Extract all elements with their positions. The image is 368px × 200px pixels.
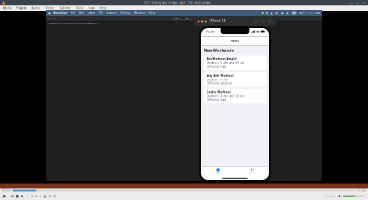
staticText: ◧ [286, 11, 289, 14]
staticText: Abs Workout Simple! [206, 57, 237, 61]
staticText: 15:02 [357, 189, 366, 192]
staticText: Tools [76, 6, 83, 10]
staticText: ⇄ [35, 195, 37, 198]
staticText: Debug [121, 11, 131, 15]
button[interactable]: Abs Workout Simple! [204, 55, 266, 70]
staticText: Home [230, 39, 239, 42]
staticText: Video [46, 6, 55, 10]
staticText: □ [357, 1, 360, 4]
staticText: Difficulty: easy [206, 65, 225, 68]
staticText: Duration: 4 min and 20 sec [206, 94, 244, 98]
button[interactable]: Cardio Workout [204, 89, 266, 103]
staticText: Difficulty: hard [206, 98, 226, 102]
staticText: Cardio Workout [206, 90, 230, 94]
staticText: ⚙ [53, 195, 55, 198]
staticText: 10:58 [205, 30, 214, 33]
button[interactable]: Play [2, 194, 7, 198]
staticText: Easy Arm Workout [206, 74, 233, 77]
staticText: ✕ [363, 1, 365, 4]
staticText: ▲ [271, 11, 273, 14]
staticText: I/O [99, 11, 103, 15]
staticText: ▦ [44, 195, 47, 198]
staticText: Playback [16, 6, 26, 10]
staticText: user — -zsh — 138×38 [173, 17, 206, 20]
staticText: Edit [79, 11, 84, 15]
staticText: Duration: 5 min and 45 sec [206, 61, 244, 65]
staticText: iPhone 14 [210, 19, 226, 22]
staticText: Difficulty: medium [206, 82, 231, 85]
staticText: — [350, 1, 353, 4]
staticText: File [71, 11, 76, 15]
button[interactable]: Easy Arm Workout [204, 72, 266, 87]
staticText: Media [3, 6, 11, 10]
staticText: Mon 11:27 AM [299, 11, 320, 15]
staticText: 001 Testing app in Expo.mp4 - VLC media … [144, 1, 211, 4]
staticText: Window [134, 11, 145, 15]
staticText: Home [216, 172, 220, 174]
staticText: ⟲ [31, 195, 33, 198]
button[interactable]: Exercise [235, 168, 269, 174]
staticText: Last login: Mon Jan 16 11:27:04 on ttys0… [48, 22, 99, 24]
staticText: 00:41 [2, 189, 11, 192]
staticText: Help [99, 6, 106, 10]
staticText: ▣ [281, 11, 284, 14]
staticText: Device [87, 11, 95, 15]
button[interactable]: Home [201, 168, 235, 174]
staticText: Exercise [248, 172, 255, 174]
staticText: Simulator [53, 11, 67, 15]
staticText: Audio [31, 6, 40, 10]
staticText: New Workouts [204, 48, 234, 53]
staticText: Subtitle [60, 6, 71, 10]
staticText: iOS 16.2 [210, 22, 215, 24]
staticText: --:--/--:-- [325, 194, 336, 198]
staticText: Help [148, 11, 155, 15]
staticText: Duration: 4 min [206, 78, 228, 81]
staticText: Features [106, 11, 117, 15]
staticText: ⧉ [49, 195, 51, 197]
staticText: View [88, 6, 94, 10]
